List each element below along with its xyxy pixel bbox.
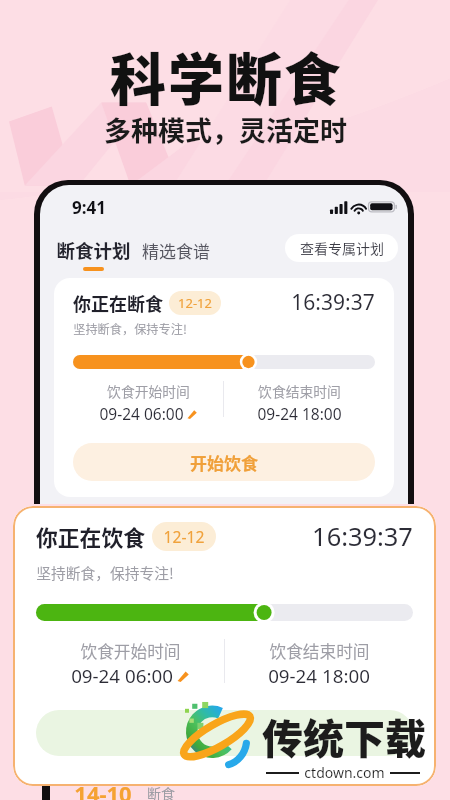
staticText: 多种模式，灵活定时 xyxy=(104,110,347,149)
staticText: 饮食开始时间 xyxy=(107,381,190,401)
staticText: 你正在断食 xyxy=(73,290,163,316)
staticText: 传统下载 xyxy=(262,706,426,765)
staticText: 饮食结束时间 xyxy=(258,381,341,401)
staticText: 09-24 18:00 xyxy=(268,663,370,689)
button[interactable]: 开始饮食 xyxy=(73,443,375,481)
button[interactable]: 查看专属计划 xyxy=(285,234,398,262)
staticText: 9:41 xyxy=(72,196,106,219)
other: Edit start time xyxy=(187,409,197,419)
staticText: 开始饮食 xyxy=(190,450,258,475)
staticText: 12-12 xyxy=(178,294,212,312)
staticText: 饮食结束时间 xyxy=(269,639,370,663)
button[interactable]: 精选食谱 xyxy=(142,238,210,263)
other: ctdown.com logo xyxy=(177,698,257,770)
staticText: 09-24 06:00 xyxy=(71,663,173,689)
staticText: 09-24 18:00 xyxy=(257,403,342,424)
staticText: 科学断食 xyxy=(109,35,341,116)
staticText: 查看专属计划 xyxy=(300,238,384,258)
staticText: 饮食开始时间 xyxy=(80,639,181,663)
staticText: 坚持断食，保持专注! xyxy=(73,320,187,338)
staticText: 断食计划 xyxy=(56,237,131,264)
staticText: 14-10 xyxy=(74,778,132,800)
staticText: 坚持断食，保持专注! xyxy=(36,562,174,583)
staticText: 你正在饮食 xyxy=(36,521,145,553)
staticText: 16:39:37 xyxy=(312,519,413,554)
staticText: 09-24 06:00 xyxy=(99,403,184,424)
button[interactable] xyxy=(36,710,413,756)
button[interactable]: 断食计划 xyxy=(56,237,131,271)
other: Edit start time xyxy=(177,670,189,682)
staticText: 12-12 xyxy=(163,526,205,547)
staticText: 16:39:37 xyxy=(291,288,375,317)
staticText: ctdown.com xyxy=(304,763,385,782)
staticText: 断食 xyxy=(147,783,175,800)
